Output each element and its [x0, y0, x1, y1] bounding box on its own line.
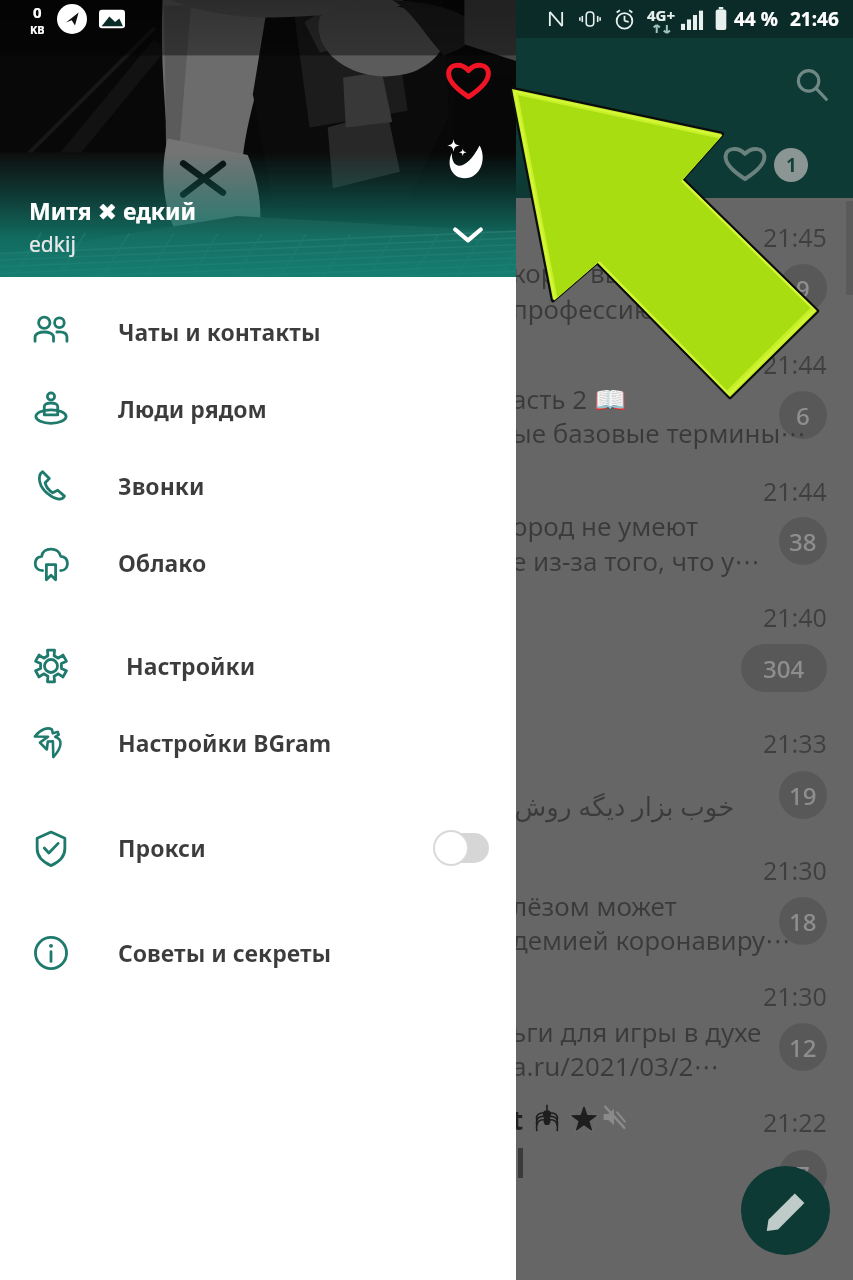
staticText: 19 — [789, 779, 817, 812]
staticText: 21:40 — [763, 600, 827, 634]
button[interactable]: Чаты и контакты — [0, 293, 516, 370]
staticText: a.ru/2021/03/2⋯ — [512, 1048, 720, 1083]
button[interactable]: Night mode — [439, 131, 495, 187]
staticText: асть 2 📖 — [512, 381, 627, 416]
staticText: 21:30 — [763, 979, 827, 1013]
button[interactable]: Chat 5 — [0, 711, 853, 837]
staticText: 4G+ — [647, 5, 676, 25]
button[interactable]: Звонки — [0, 447, 516, 524]
button[interactable]: Chat 2 — [0, 332, 853, 458]
button[interactable]: Chat 8 — [0, 1091, 853, 1217]
staticText: Чаты и контакты — [118, 316, 321, 347]
staticText: 12 — [789, 1031, 817, 1064]
button[interactable]: Search — [784, 57, 840, 113]
staticText: профессию — [512, 291, 655, 326]
button[interactable]: Favorites — [719, 137, 771, 189]
staticText: Советы и секреты — [118, 937, 332, 968]
button[interactable]: New message — [741, 1166, 830, 1255]
staticText: 7 — [796, 1158, 810, 1191]
button[interactable]: Chat 1 — [0, 205, 853, 331]
staticText: Настройки — [126, 650, 256, 681]
button[interactable]: Expand accounts — [443, 209, 493, 259]
staticText: 21:44 — [763, 474, 827, 508]
button[interactable]: Настройки BGram — [0, 704, 516, 781]
staticText: ород не умеют — [512, 508, 699, 543]
staticText: 18 — [789, 905, 817, 938]
button[interactable]: 1 — [774, 148, 808, 182]
button[interactable]: Облако — [0, 524, 516, 601]
button[interactable]: Chat 3 — [0, 458, 853, 584]
staticText: лёзом может — [512, 888, 677, 923]
staticText: ые базовые термины⋯ — [512, 415, 807, 450]
staticText: 9 — [796, 272, 810, 305]
staticText: демией коронавиру⋯ — [512, 922, 791, 957]
staticText: 21:45 — [763, 220, 827, 254]
staticText: кор — [512, 255, 557, 290]
staticText: edkij — [29, 230, 76, 259]
button[interactable]: Chat 6 — [0, 838, 853, 964]
staticText: е из-за того, что у⋯ — [512, 543, 761, 578]
button[interactable]: Настройки — [0, 627, 516, 704]
button[interactable]: Советы и секреты — [0, 914, 516, 991]
staticText: 0 — [33, 2, 42, 22]
staticText: t — [512, 1102, 524, 1137]
staticText: Настройки BGram — [118, 727, 332, 758]
staticText: 38 — [789, 525, 817, 558]
button[interactable]: Chat 4 — [0, 585, 853, 711]
staticText: KB — [30, 22, 45, 37]
button[interactable]: Люди рядом — [0, 370, 516, 447]
staticText: 21:30 — [763, 853, 827, 887]
staticText: Облако — [118, 547, 207, 578]
staticText: Прокси — [118, 832, 206, 863]
button[interactable]: Favorite — [443, 55, 493, 105]
staticText: 304 — [763, 652, 805, 685]
staticText: вы — [590, 255, 625, 290]
button[interactable]: Chat 7 — [0, 964, 853, 1090]
staticText: 21:46 — [790, 6, 839, 32]
staticText: 21:22 — [763, 1105, 827, 1139]
button[interactable]: Прокси — [0, 809, 516, 886]
staticText: 1 — [786, 152, 797, 178]
staticText: 44 % — [734, 6, 778, 32]
staticText: 6 — [796, 399, 810, 432]
staticText: Звонки — [118, 470, 205, 501]
staticText: 21:44 — [763, 347, 827, 381]
staticText: خوب بزار دیگه روش کار — [475, 788, 735, 823]
staticText: Митя ✖ едкий — [29, 195, 196, 226]
button[interactable]: Toggle proxy — [433, 830, 489, 866]
staticText: 21:33 — [763, 726, 827, 760]
staticText: Люди рядом — [118, 393, 267, 424]
staticText: ьги для игры в духе — [512, 1014, 762, 1049]
button[interactable]: Chat 9 — [0, 1217, 853, 1280]
